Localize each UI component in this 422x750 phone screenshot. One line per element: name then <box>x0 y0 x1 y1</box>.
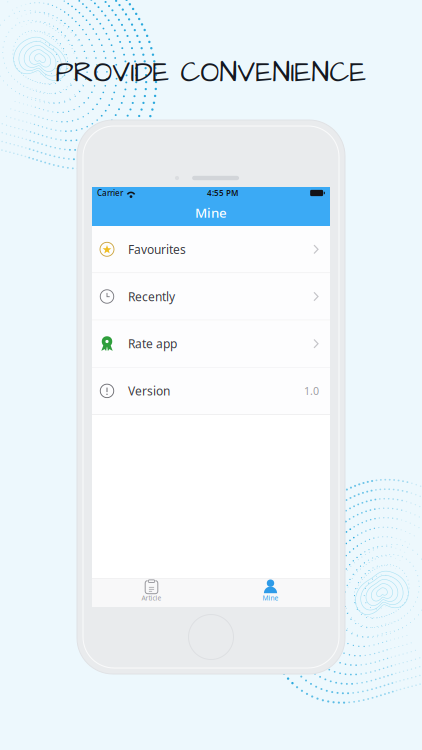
button[interactable]: Favourites <box>92 226 330 273</box>
staticText: Mine <box>262 594 278 602</box>
staticText: Rate app <box>128 336 177 352</box>
staticText: Mine <box>195 204 227 221</box>
staticText: Version <box>128 383 170 399</box>
staticText: Recently <box>128 288 175 304</box>
button[interactable]: Version <box>92 368 330 414</box>
staticText: Favourites <box>128 241 186 257</box>
staticText: Carrier <box>97 188 123 198</box>
staticText: 4:55 PM <box>207 188 238 198</box>
button[interactable]: Article <box>92 578 211 607</box>
staticText: PROVIDE CONVENIENCE <box>55 53 366 92</box>
button[interactable]: Recently <box>92 273 330 320</box>
staticText: Article <box>141 594 161 602</box>
staticText: 1.0 <box>304 384 319 398</box>
button[interactable]: Mine <box>211 578 330 607</box>
button[interactable]: Rate app <box>92 320 330 367</box>
